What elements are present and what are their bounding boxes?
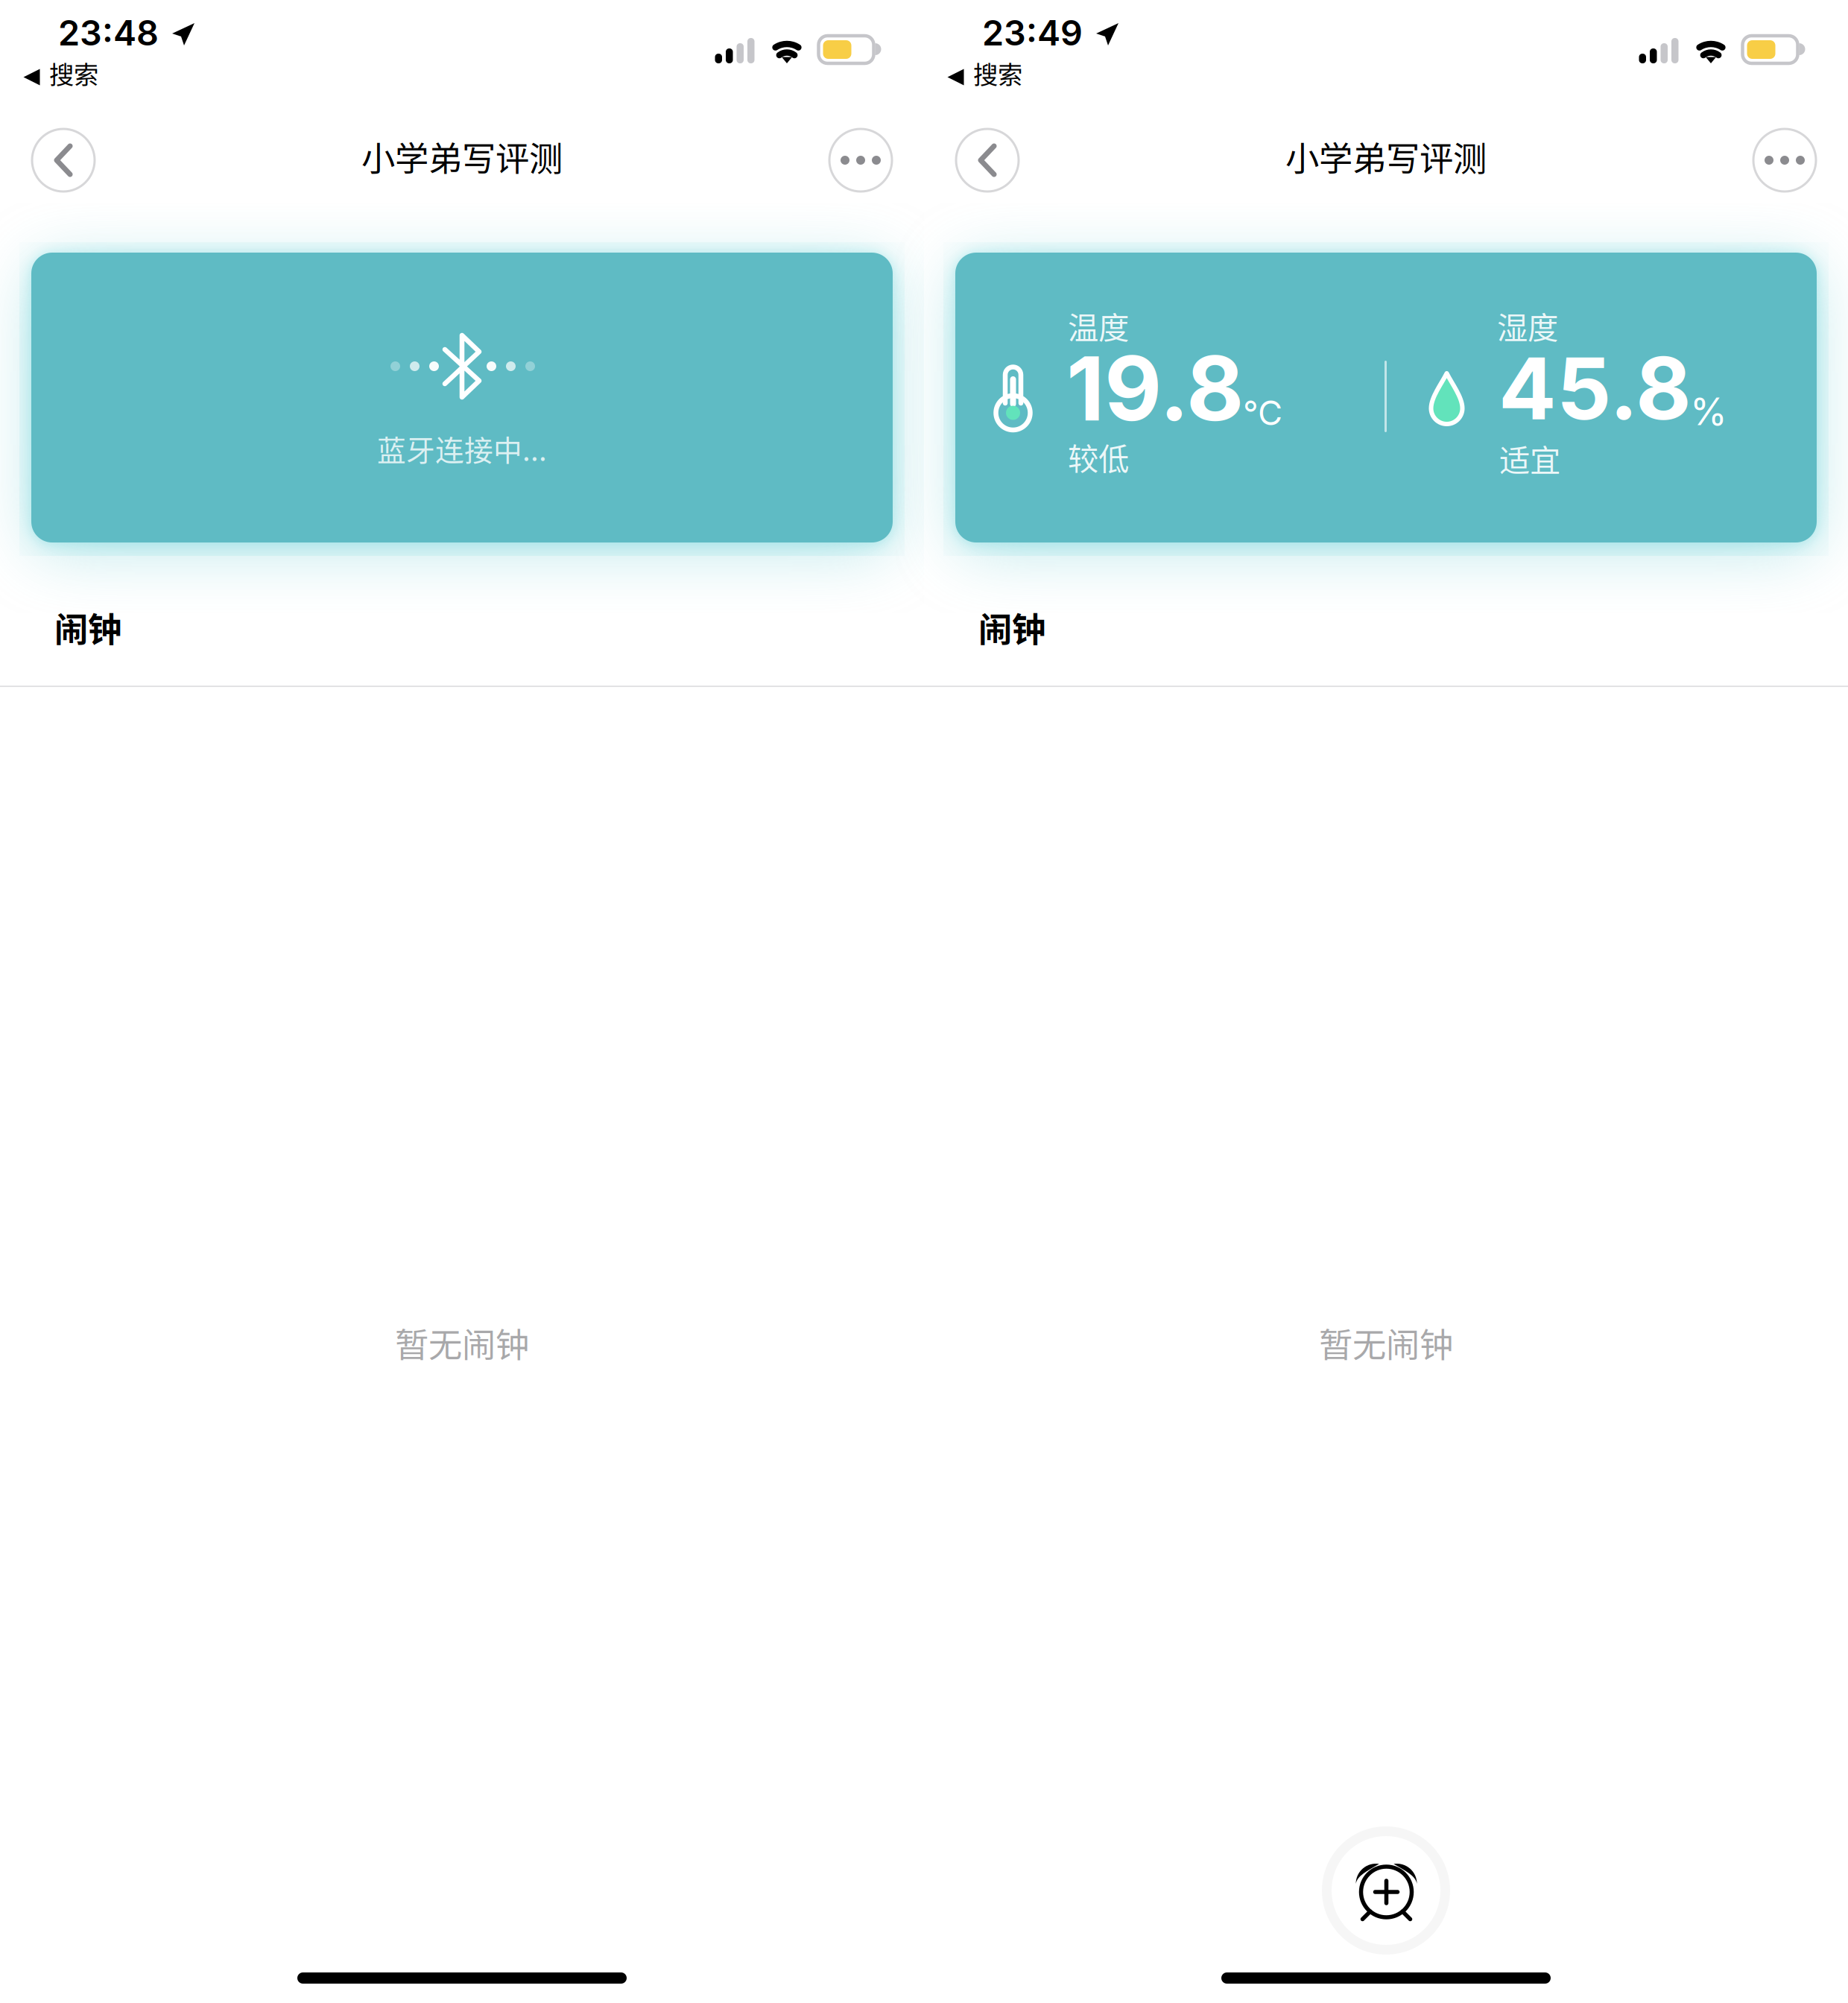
button[interactable]: 更多	[829, 129, 892, 192]
staticText: 蓝牙连接中...	[377, 428, 547, 469]
staticText: 湿度	[1497, 303, 1558, 348]
staticText: 45.8	[1499, 337, 1692, 440]
staticText: 搜索	[49, 55, 98, 91]
button[interactable]: 更多	[1753, 129, 1816, 192]
staticText: 小学弟写评测	[1285, 132, 1487, 181]
staticText: 温度	[1068, 303, 1129, 348]
staticText: 暂无闹钟	[395, 1318, 529, 1367]
staticText: %	[1690, 388, 1727, 434]
staticText: 23:49	[982, 12, 1083, 54]
staticText: 较低	[1068, 435, 1129, 479]
staticText: 搜索	[973, 55, 1022, 91]
staticText: 闹钟	[54, 603, 121, 652]
staticText: 19.8	[1066, 335, 1244, 442]
staticText: 适宜	[1499, 436, 1560, 481]
staticText: 小学弟写评测	[361, 132, 563, 181]
staticText: 闹钟	[978, 603, 1045, 652]
button[interactable]: 返回	[956, 129, 1019, 192]
staticText: 23:48	[58, 12, 159, 54]
button[interactable]: 返回	[32, 129, 95, 192]
staticText: 暂无闹钟	[1319, 1318, 1453, 1367]
button[interactable]: 添加闹钟	[1322, 1826, 1450, 1955]
staticText: °C	[1243, 392, 1282, 433]
